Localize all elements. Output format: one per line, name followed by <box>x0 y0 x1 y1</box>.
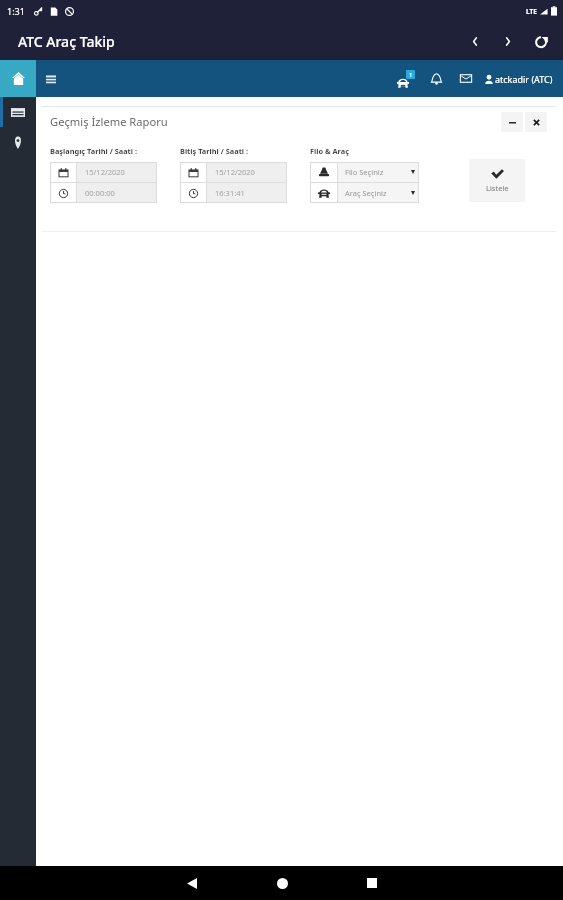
button[interactable]: Listele <box>469 159 525 202</box>
button[interactable]: Forward <box>491 22 524 60</box>
staticText: Filo & Araç <box>310 146 349 156</box>
button[interactable]: 15/12/2020 <box>77 162 157 182</box>
staticText: 16:31:41 <box>215 188 245 198</box>
button[interactable]: Refresh <box>524 22 557 60</box>
staticText: Filo Seçiniz <box>345 167 384 177</box>
button[interactable]: Back <box>147 866 237 900</box>
staticText: 15/12/2020 <box>85 167 125 177</box>
staticText: Listele <box>486 183 509 193</box>
button[interactable]: Recents <box>327 866 417 900</box>
staticText: Araç Seçiniz <box>345 188 387 198</box>
button[interactable]: atckadir (ATC) <box>481 65 557 93</box>
button[interactable]: Back <box>458 22 491 60</box>
staticText: 15/12/2020 <box>215 167 255 177</box>
staticText: LTE <box>526 7 537 16</box>
button[interactable]: Home <box>0 60 36 97</box>
staticText: ATC Araç Takip <box>18 32 115 51</box>
button[interactable]: Home <box>237 866 327 900</box>
staticText: Geçmiş İzleme Raporu <box>50 114 168 129</box>
staticText: Bitiş Tarihi / Saati : <box>180 146 249 156</box>
button[interactable]: Menu <box>38 64 64 94</box>
button[interactable]: Minimize <box>501 112 523 132</box>
button[interactable]: Vehicles <box>391 60 421 97</box>
button[interactable]: Close <box>525 112 547 132</box>
button[interactable]: 00:00:00 <box>77 183 157 203</box>
staticText: Başlangıç Tarihi / Saati : <box>50 146 137 156</box>
staticText: 1:31 <box>7 5 25 17</box>
button[interactable]: 16:31:41 <box>207 183 287 203</box>
button[interactable]: Reports <box>0 97 36 127</box>
button[interactable]: Locations <box>0 127 36 158</box>
staticText: 1 <box>409 71 413 79</box>
button[interactable]: 15/12/2020 <box>207 162 287 182</box>
button[interactable]: Filo Seçiniz <box>338 162 419 182</box>
button[interactable]: Notifications <box>421 60 451 97</box>
button[interactable]: Messages <box>451 60 481 97</box>
button[interactable]: Araç Seçiniz <box>338 183 419 203</box>
staticText: atckadir (ATC) <box>495 73 553 85</box>
staticText: 00:00:00 <box>85 188 115 198</box>
